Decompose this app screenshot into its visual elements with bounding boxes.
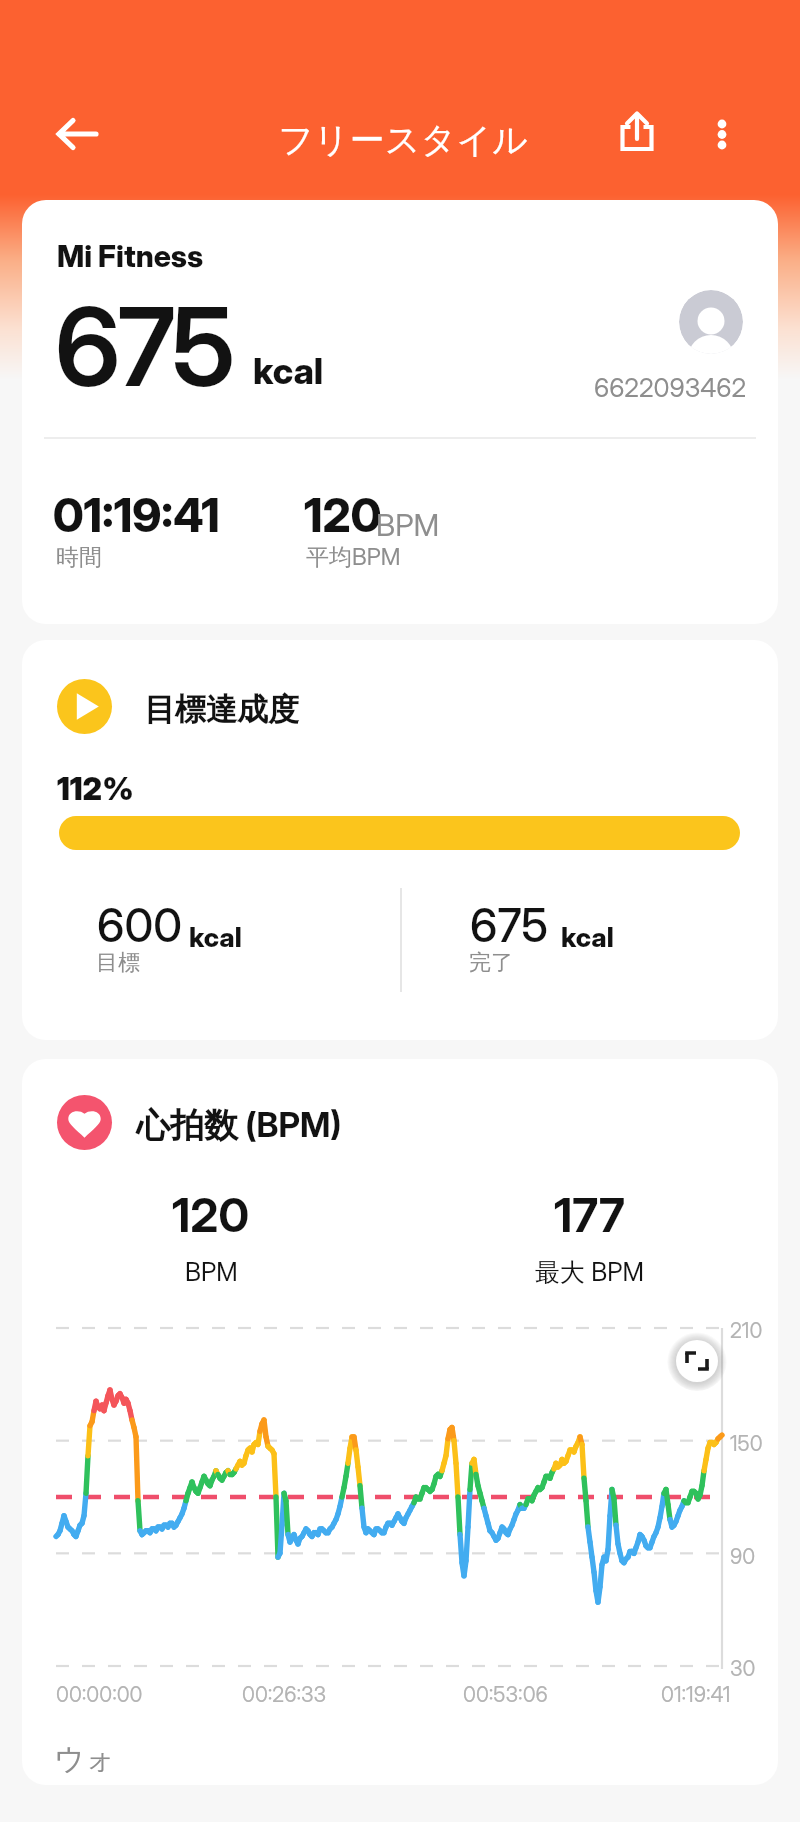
staticText: 目標 xyxy=(96,949,140,977)
staticText: 00:26:33 xyxy=(242,1682,327,1707)
staticText: 目標達成度 xyxy=(144,690,299,729)
staticText: 最大 BPM xyxy=(535,1257,644,1289)
staticText: 時間 xyxy=(56,543,102,572)
button[interactable]: Back xyxy=(37,94,117,174)
staticText: 150 xyxy=(730,1431,763,1456)
staticText: 30 xyxy=(730,1656,756,1681)
staticText: 完了 xyxy=(469,949,513,977)
button[interactable]: Expand chart xyxy=(667,1331,727,1391)
staticText: Mi Fitness xyxy=(57,238,204,274)
staticText: BPM xyxy=(185,1257,238,1287)
staticText: 120 xyxy=(172,1186,250,1243)
staticText: 01:19:41 xyxy=(53,487,220,543)
staticText: BPM xyxy=(376,507,440,543)
button[interactable]: More options xyxy=(682,94,762,174)
staticText: 210 xyxy=(730,1318,763,1343)
staticText: kcal xyxy=(561,921,614,954)
staticText: 120 xyxy=(304,487,382,543)
staticText: 6622093462 xyxy=(594,372,747,403)
staticText: 00:53:06 xyxy=(463,1682,548,1707)
staticText: ウォ xyxy=(54,1740,116,1778)
staticText: 112% xyxy=(57,770,134,808)
staticText: kcal xyxy=(253,349,324,393)
staticText: 177 xyxy=(554,1186,625,1243)
staticText: 00:00:00 xyxy=(56,1682,143,1707)
staticText: 675 xyxy=(55,281,233,412)
staticText: 600 xyxy=(97,897,182,953)
staticText: フリースタイル xyxy=(278,118,528,162)
staticText: kcal xyxy=(189,921,242,954)
staticText: 心拍数 (BPM) xyxy=(136,1104,342,1147)
staticText: 01:19:41 xyxy=(661,1682,731,1707)
staticText: 平均BPM xyxy=(306,543,401,572)
button[interactable]: Share xyxy=(597,91,677,171)
staticText: 675 xyxy=(470,897,549,953)
staticText: 90 xyxy=(730,1544,756,1569)
